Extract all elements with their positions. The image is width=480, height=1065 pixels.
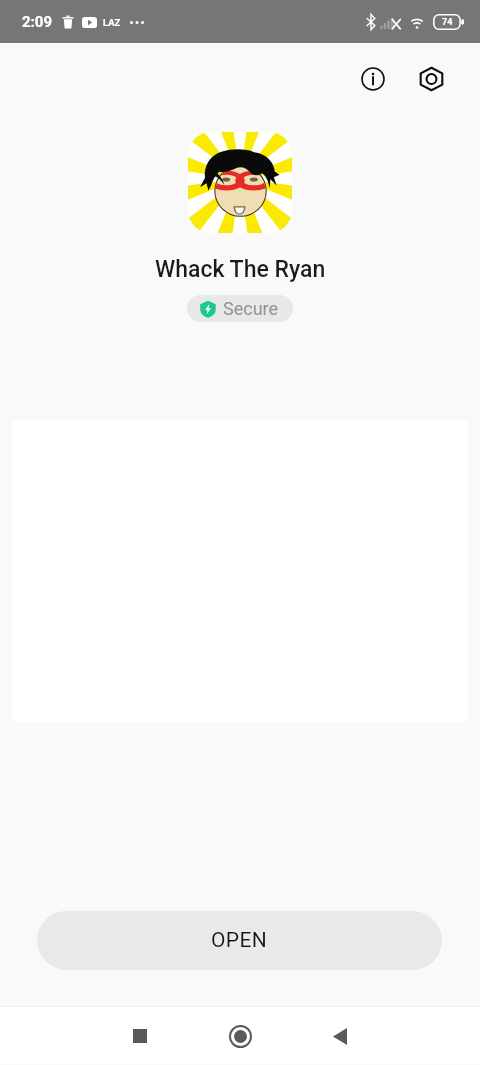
button[interactable]: OPEN: [37, 911, 442, 970]
button[interactable]: Settings: [407, 55, 455, 103]
staticText: OPEN: [211, 928, 268, 953]
staticText: Secure: [223, 298, 279, 319]
button[interactable]: Recents: [116, 1012, 164, 1060]
button[interactable]: Home: [216, 1012, 264, 1060]
staticText: 2:09: [22, 13, 53, 31]
button[interactable]: Secure: [187, 295, 293, 322]
button[interactable]: Back: [316, 1012, 364, 1060]
staticText: 74: [442, 17, 453, 28]
staticText: Whack The Ryan: [155, 256, 326, 283]
staticText: LAZ: [103, 17, 121, 28]
button[interactable]: App info: [349, 55, 397, 103]
